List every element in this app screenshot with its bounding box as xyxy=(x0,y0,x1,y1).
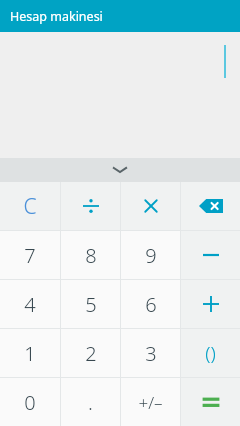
staticText: 4 xyxy=(24,291,36,318)
button[interactable]: C xyxy=(0,182,60,230)
button[interactable]: 8 xyxy=(61,231,120,279)
staticText: 0 xyxy=(24,389,36,416)
button[interactable]: () xyxy=(181,329,240,377)
staticText: () xyxy=(205,340,216,366)
button[interactable]: 7 xyxy=(0,231,60,279)
button[interactable] xyxy=(61,182,120,230)
button[interactable]: 0 xyxy=(0,378,60,426)
staticText: 2 xyxy=(85,340,97,367)
staticText: C xyxy=(23,192,37,221)
button[interactable]: 2 xyxy=(61,329,120,377)
staticText: 8 xyxy=(85,242,97,269)
staticText: 3 xyxy=(145,340,157,367)
button[interactable]: 6 xyxy=(121,280,180,328)
button[interactable]: Equals xyxy=(181,378,240,426)
button[interactable]: Backspace xyxy=(181,182,240,230)
button[interactable]: . xyxy=(61,378,120,426)
button[interactable]: Plus xyxy=(181,280,240,328)
staticText: 6 xyxy=(145,291,157,318)
button[interactable]: 4 xyxy=(0,280,60,328)
staticText: . xyxy=(88,389,93,416)
staticText: 5 xyxy=(85,291,97,318)
button[interactable]: 3 xyxy=(121,329,180,377)
button[interactable]: Collapse history xyxy=(0,158,240,182)
button[interactable]: Minus xyxy=(181,231,240,279)
button[interactable]: 5 xyxy=(61,280,120,328)
staticText: Hesap makinesi xyxy=(10,8,103,25)
button[interactable] xyxy=(121,182,180,230)
button[interactable]: 1 xyxy=(0,329,60,377)
staticText: 7 xyxy=(24,242,36,269)
staticText: 1 xyxy=(24,340,36,367)
staticText: 9 xyxy=(145,242,157,269)
button[interactable]: +/– xyxy=(121,378,180,426)
staticText: +/– xyxy=(138,391,163,414)
button[interactable]: 9 xyxy=(121,231,180,279)
